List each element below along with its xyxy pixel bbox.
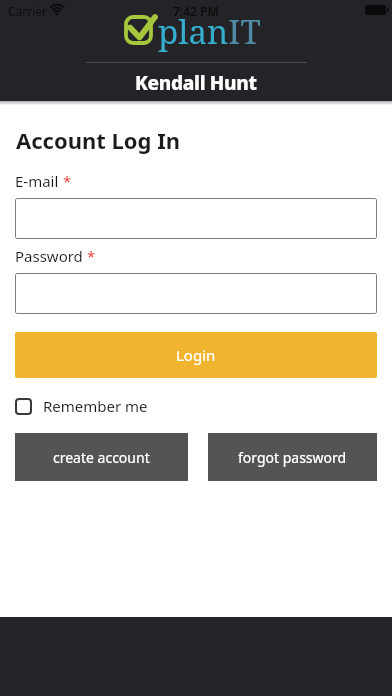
staticText: Account Log In (16, 125, 181, 155)
button[interactable]: forgot password (208, 433, 377, 481)
button[interactable]: create account (15, 433, 188, 481)
button[interactable]: Login (15, 332, 377, 378)
staticText: E-mail (15, 171, 63, 191)
staticText: * (87, 246, 96, 266)
button[interactable]: Remember me (15, 396, 148, 416)
staticText: create account (53, 448, 150, 467)
staticText: forgot password (238, 448, 347, 467)
button[interactable] (15, 198, 377, 239)
staticText: planIT (158, 9, 261, 54)
button[interactable] (15, 273, 377, 314)
staticText: 7:42 PM (173, 3, 219, 19)
staticText: Login (176, 345, 216, 365)
staticText: Remember me (43, 396, 148, 416)
staticText: Password (15, 246, 87, 266)
staticText: Kendall Hunt (135, 70, 257, 96)
staticText: * (63, 171, 72, 191)
staticText: Carrier (8, 3, 48, 19)
